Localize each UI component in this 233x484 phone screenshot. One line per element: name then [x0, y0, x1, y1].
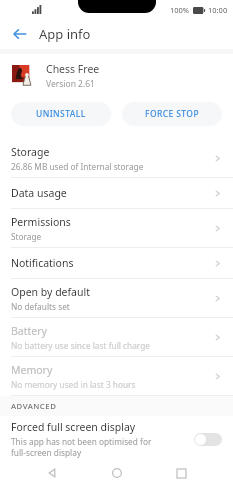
staticText: Permissions [11, 215, 71, 229]
button[interactable]: Back [9, 23, 31, 45]
staticText: Data usage [11, 186, 67, 200]
button[interactable]: Forced full screen display [0, 416, 233, 462]
button[interactable]: Battery [0, 318, 233, 356]
staticText: No battery use since last full charge [11, 340, 150, 351]
staticText: App info [39, 25, 91, 43]
staticText: Notifications [11, 256, 74, 270]
staticText: Forced full screen display [11, 420, 136, 434]
staticText: 100% [170, 5, 190, 15]
staticText: Version 2.61 [46, 78, 95, 90]
button[interactable]: Recent apps [168, 462, 194, 484]
button[interactable]: Memory [0, 357, 233, 395]
button[interactable]: FORCE STOP [122, 102, 222, 126]
button[interactable]: Data usage [0, 178, 233, 208]
staticText: Battery [11, 324, 47, 338]
button[interactable]: Home [104, 462, 130, 484]
button[interactable]: Storage [0, 139, 233, 177]
button[interactable]: Permissions [0, 209, 233, 247]
staticText: Chess Free [46, 62, 100, 76]
staticText: This app has not been optimised for [11, 436, 152, 447]
staticText: Storage [11, 145, 50, 159]
button[interactable]: Back [39, 462, 65, 484]
staticText: ADVANCED [11, 401, 57, 412]
button[interactable]: Notifications [0, 248, 233, 278]
staticText: 26.86 MB used of Internal storage [11, 161, 144, 172]
button[interactable]: Open by default [0, 279, 233, 317]
staticText: UNINSTALL [36, 108, 86, 120]
staticText: 10:00 [208, 5, 228, 15]
staticText: full-screen display [11, 447, 82, 458]
staticText: Storage [11, 231, 42, 242]
button[interactable]: Forced full screen display toggle [194, 433, 222, 446]
staticText: Open by default [11, 285, 91, 299]
button[interactable]: UNINSTALL [11, 102, 111, 126]
staticText: FORCE STOP [145, 108, 199, 120]
button[interactable]: Chess Free [0, 54, 233, 98]
staticText: No memory used in last 3 hours [11, 379, 136, 390]
staticText: No defaults set [11, 301, 70, 312]
staticText: Memory [11, 363, 53, 377]
